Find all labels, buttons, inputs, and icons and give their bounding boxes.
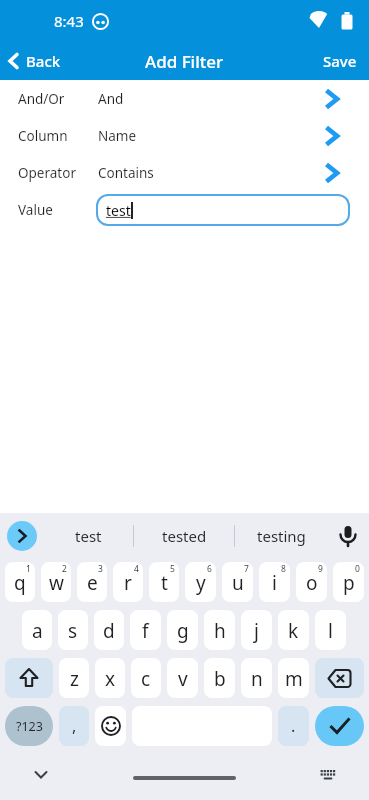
staticText: l bbox=[328, 618, 333, 644]
button[interactable]: z bbox=[59, 658, 89, 698]
button[interactable]: tested bbox=[134, 513, 234, 558]
button[interactable]: e bbox=[77, 562, 107, 602]
staticText: c bbox=[141, 666, 151, 692]
button[interactable]: u bbox=[222, 562, 253, 602]
button[interactable]: test bbox=[96, 194, 350, 226]
button[interactable]: g bbox=[167, 610, 198, 650]
staticText: 0 bbox=[355, 563, 360, 575]
staticText: m bbox=[285, 666, 303, 692]
staticText: . bbox=[291, 715, 296, 737]
staticText: And/Or bbox=[18, 90, 98, 108]
staticText: 9 bbox=[318, 563, 323, 575]
staticText: h bbox=[214, 618, 226, 644]
button[interactable]: Operator bbox=[0, 154, 369, 191]
button[interactable]: p bbox=[333, 562, 364, 602]
staticText: x bbox=[105, 666, 116, 692]
button[interactable] bbox=[133, 776, 236, 780]
button[interactable]: o bbox=[296, 562, 327, 602]
staticText: j bbox=[254, 618, 259, 644]
staticText: r bbox=[124, 570, 132, 596]
button[interactable] bbox=[7, 521, 37, 551]
button[interactable]: l bbox=[315, 610, 346, 650]
button[interactable]: n bbox=[241, 658, 272, 698]
staticText: Contains bbox=[98, 164, 154, 182]
button[interactable]: a bbox=[22, 610, 52, 650]
staticText: s bbox=[68, 618, 78, 644]
staticText: e bbox=[87, 570, 98, 596]
button[interactable]: test bbox=[44, 513, 133, 558]
button[interactable] bbox=[315, 762, 341, 788]
staticText: 1 bbox=[26, 563, 31, 575]
button[interactable]: f bbox=[130, 610, 161, 650]
staticText: ?123 bbox=[16, 718, 43, 735]
staticText: a bbox=[32, 618, 43, 644]
staticText: tested bbox=[162, 526, 207, 546]
staticText: k bbox=[288, 618, 299, 644]
staticText: n bbox=[251, 666, 263, 692]
button[interactable]: s bbox=[58, 610, 88, 650]
staticText: q bbox=[14, 570, 26, 596]
staticText: 2 bbox=[62, 563, 67, 575]
staticText: p bbox=[343, 570, 355, 596]
button[interactable]: x bbox=[95, 658, 125, 698]
staticText: Column bbox=[18, 127, 98, 145]
button[interactable]: c bbox=[131, 658, 161, 698]
staticText: w bbox=[49, 570, 64, 596]
button[interactable]: . bbox=[278, 706, 309, 746]
staticText: 8:43 bbox=[54, 11, 84, 31]
button[interactable]: And/Or bbox=[0, 80, 369, 117]
staticText: test bbox=[106, 201, 131, 220]
button[interactable]: k bbox=[278, 610, 309, 650]
staticText: , bbox=[72, 715, 77, 737]
staticText: t bbox=[161, 570, 168, 596]
staticText: b bbox=[214, 666, 226, 692]
button[interactable]: Column bbox=[0, 117, 369, 154]
button[interactable]: Save bbox=[323, 51, 369, 71]
button[interactable]: r bbox=[113, 562, 143, 602]
button[interactable]: d bbox=[94, 610, 124, 650]
button[interactable] bbox=[327, 513, 369, 558]
staticText: g bbox=[177, 618, 189, 644]
staticText: u bbox=[232, 570, 244, 596]
staticText: Operator bbox=[18, 164, 98, 182]
button[interactable]: i bbox=[259, 562, 290, 602]
staticText: 8 bbox=[281, 563, 286, 575]
staticText: 5 bbox=[170, 563, 175, 575]
staticText: o bbox=[306, 570, 318, 596]
staticText: z bbox=[70, 666, 79, 692]
staticText: 6 bbox=[207, 563, 212, 575]
button[interactable]: t bbox=[149, 562, 179, 602]
staticText: Add Filter bbox=[145, 50, 224, 73]
button[interactable]: q bbox=[5, 562, 35, 602]
button[interactable] bbox=[315, 658, 364, 698]
staticText: y bbox=[196, 570, 206, 596]
button[interactable]: Back bbox=[0, 51, 61, 71]
button[interactable] bbox=[5, 658, 53, 698]
staticText: Value bbox=[18, 201, 96, 219]
staticText: testing bbox=[257, 526, 306, 546]
button[interactable]: w bbox=[41, 562, 71, 602]
button[interactable]: ?123 bbox=[5, 706, 53, 746]
button[interactable]: y bbox=[185, 562, 216, 602]
staticText: v bbox=[178, 666, 188, 692]
button[interactable]: testing bbox=[235, 513, 327, 558]
staticText: 4 bbox=[134, 563, 139, 575]
button[interactable]: v bbox=[167, 658, 198, 698]
staticText: f bbox=[142, 618, 149, 644]
button[interactable]: , bbox=[59, 706, 89, 746]
staticText: And bbox=[98, 90, 124, 108]
button[interactable]: h bbox=[204, 610, 235, 650]
button[interactable] bbox=[315, 706, 364, 746]
staticText: test bbox=[75, 526, 102, 546]
button[interactable] bbox=[28, 762, 54, 788]
button[interactable]: m bbox=[278, 658, 309, 698]
button[interactable] bbox=[95, 706, 126, 746]
staticText: Back bbox=[26, 51, 61, 71]
staticText: i bbox=[272, 570, 277, 596]
staticText: 7 bbox=[244, 563, 249, 575]
button[interactable]: j bbox=[241, 610, 272, 650]
staticText: Name bbox=[98, 127, 137, 145]
staticText: d bbox=[103, 618, 115, 644]
button[interactable]: b bbox=[204, 658, 235, 698]
